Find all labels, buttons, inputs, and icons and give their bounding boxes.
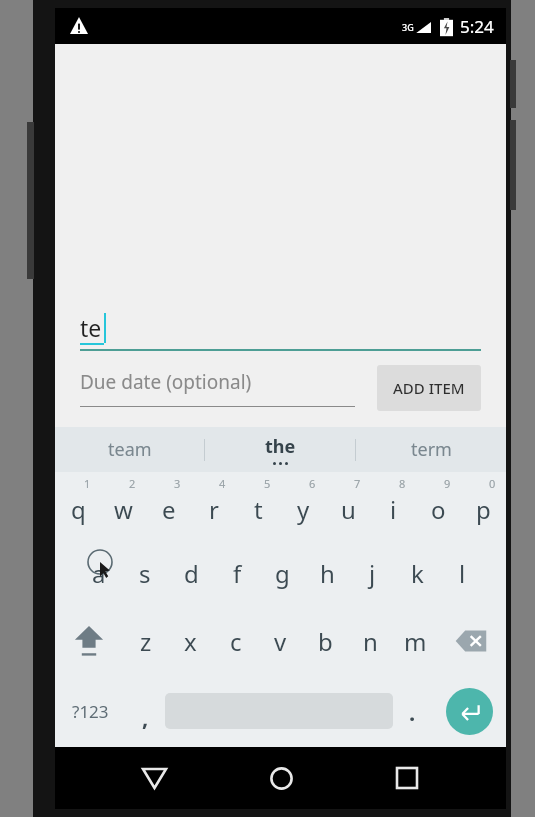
staticText: team: [108, 437, 152, 462]
staticText: l: [459, 557, 466, 590]
button[interactable]: j: [350, 539, 395, 607]
button[interactable]: Backspace: [438, 607, 506, 675]
button[interactable]: 1: [55, 472, 101, 539]
button[interactable]: .: [393, 675, 432, 747]
staticText: j: [369, 557, 376, 590]
button[interactable]: 3: [146, 472, 191, 539]
button[interactable]: 5: [236, 472, 281, 539]
staticText: u: [341, 493, 356, 526]
button[interactable]: ,: [126, 675, 165, 747]
staticText: a: [92, 557, 106, 590]
button[interactable]: a: [76, 539, 122, 607]
staticText: e: [162, 493, 176, 526]
button[interactable]: Shift: [55, 607, 123, 675]
staticText: 7: [354, 476, 361, 491]
staticText: c: [230, 625, 242, 658]
staticText: .: [409, 697, 416, 727]
staticText: 5:24: [460, 15, 494, 38]
button[interactable]: v: [258, 607, 303, 675]
button[interactable]: 7: [326, 472, 371, 539]
button[interactable]: ?123: [55, 675, 126, 747]
staticText: ?123: [72, 700, 109, 723]
staticText: 5: [264, 476, 271, 491]
button[interactable]: 4: [191, 472, 236, 539]
staticText: y: [297, 493, 310, 526]
button[interactable]: ADD ITEM: [377, 365, 481, 411]
button[interactable]: c: [213, 607, 258, 675]
staticText: s: [139, 557, 151, 590]
staticText: d: [184, 557, 199, 590]
staticText: i: [390, 493, 397, 526]
button[interactable]: d: [168, 539, 214, 607]
button[interactable]: n: [348, 607, 393, 675]
staticText: p: [476, 493, 491, 526]
button[interactable]: m: [393, 607, 438, 675]
staticText: 2: [129, 476, 136, 491]
button[interactable]: k: [395, 539, 440, 607]
button[interactable]: Enter: [446, 688, 493, 735]
button[interactable]: Due date (optional): [80, 369, 365, 407]
staticText: r: [209, 493, 219, 526]
staticText: 4: [219, 476, 226, 491]
button[interactable]: b: [303, 607, 348, 675]
button[interactable]: term: [356, 427, 506, 472]
staticText: o: [431, 493, 446, 526]
staticText: 3G: [402, 21, 414, 33]
staticText: term: [411, 437, 452, 462]
staticText: t: [254, 493, 263, 526]
button[interactable]: 9: [416, 472, 461, 539]
button[interactable]: te: [80, 301, 481, 349]
button[interactable]: 6: [281, 472, 326, 539]
staticText: 9: [444, 476, 451, 491]
button[interactable]: team: [55, 427, 204, 472]
staticText: q: [71, 493, 86, 526]
staticText: h: [320, 557, 335, 590]
staticText: b: [318, 625, 333, 658]
staticText: z: [140, 625, 152, 658]
button[interactable]: 0: [461, 472, 506, 539]
staticText: 6: [309, 476, 316, 491]
button[interactable]: g: [260, 539, 305, 607]
staticText: m: [404, 625, 427, 658]
button[interactable]: f: [214, 539, 260, 607]
button[interactable]: Home: [253, 750, 309, 806]
staticText: k: [411, 557, 424, 590]
staticText: g: [275, 557, 290, 590]
staticText: ,: [142, 702, 149, 732]
staticText: Due date (optional): [80, 369, 252, 395]
button[interactable]: Back: [126, 750, 182, 806]
button[interactable]: h: [305, 539, 350, 607]
staticText: ADD ITEM: [393, 378, 465, 398]
button[interactable]: the: [205, 427, 355, 472]
button[interactable]: l: [440, 539, 485, 607]
button[interactable]: 2: [101, 472, 146, 539]
staticText: the: [265, 434, 296, 459]
staticText: f: [233, 557, 242, 590]
button[interactable]: x: [168, 607, 213, 675]
staticText: 3: [174, 476, 181, 491]
staticText: x: [184, 625, 197, 658]
staticText: te: [80, 312, 102, 343]
button[interactable]: z: [123, 607, 168, 675]
staticText: 0: [489, 476, 496, 491]
staticText: n: [363, 625, 378, 658]
staticText: w: [114, 493, 133, 526]
staticText: 1: [84, 476, 91, 491]
button[interactable]: Recents: [379, 750, 435, 806]
button[interactable]: 8: [371, 472, 416, 539]
button[interactable]: s: [122, 539, 168, 607]
staticText: 8: [399, 476, 406, 491]
staticText: v: [274, 625, 287, 658]
